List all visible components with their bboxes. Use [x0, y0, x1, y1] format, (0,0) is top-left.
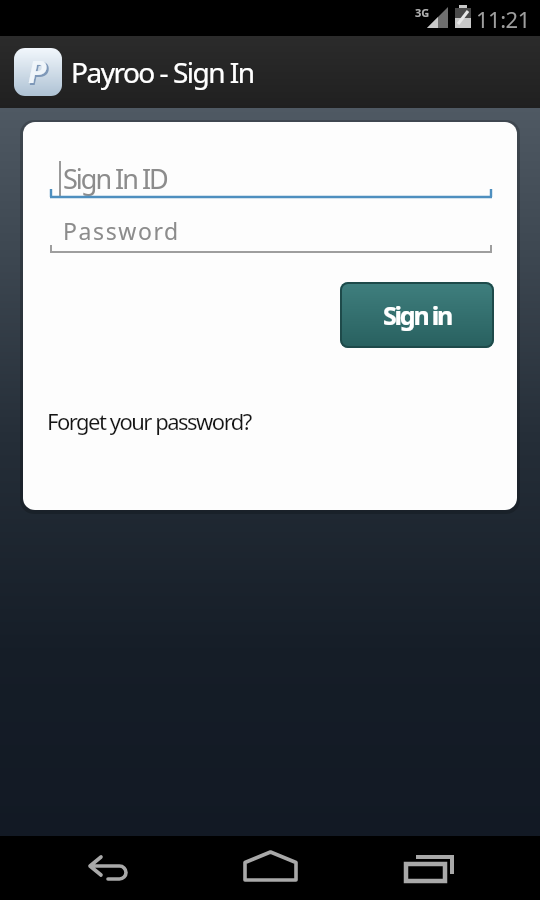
staticText: Payroo - Sign In: [71, 53, 254, 91]
staticText: Password: [63, 215, 180, 246]
staticText: Sign In ID: [63, 160, 167, 197]
button[interactable]: Password: [50, 207, 492, 255]
staticText: 3G: [415, 5, 430, 20]
button[interactable]: P: [14, 48, 62, 96]
button[interactable]: [402, 836, 462, 900]
button[interactable]: Forget your password?: [41, 400, 257, 442]
staticText: 11:21: [476, 4, 530, 34]
button[interactable]: Sign in: [340, 282, 494, 348]
staticText: Forget your password?: [47, 406, 251, 436]
button[interactable]: [78, 836, 138, 900]
staticText: Sign in: [383, 298, 452, 332]
staticText: P: [28, 51, 47, 92]
staticText: P: [29, 51, 49, 95]
button[interactable]: [240, 836, 300, 900]
button[interactable]: Sign In ID: [50, 152, 492, 200]
